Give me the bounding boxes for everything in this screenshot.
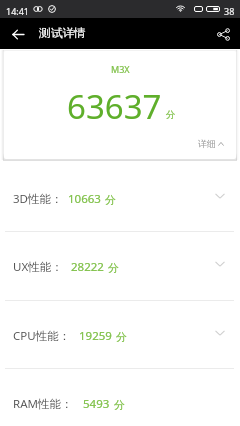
staticText: 14:41 [6,5,30,17]
button[interactable]: 详细 [198,138,224,149]
staticText: CPU性能： [13,328,71,344]
staticText: M3X [111,63,130,75]
staticText: 分 [114,398,125,412]
staticText: 10663 [68,191,101,207]
button[interactable]: RAM性能： [0,369,240,426]
button[interactable]: M3X [4,51,236,159]
staticText: 详细 [198,138,216,149]
staticText: 分 [108,261,119,275]
staticText: RAM性能： [13,396,73,412]
staticText: 38 [224,5,235,17]
button[interactable]: CPU性能： [0,301,240,370]
staticText: UX性能： [13,259,63,275]
staticText: 3D性能： [13,191,63,207]
staticText: 分 [116,330,127,344]
staticText: 63637 [67,84,162,129]
staticText: 分 [166,109,176,121]
staticText: 5493 [83,396,110,412]
button[interactable]: 3D性能： [0,164,240,232]
staticText: 测试详情 [39,26,86,41]
staticText: 28222 [71,259,104,275]
staticText: 19259 [79,328,112,344]
button[interactable]: UX性能： [0,232,240,300]
button[interactable]: Share [212,23,234,45]
button[interactable]: Back [7,23,29,45]
staticText: 分 [105,193,116,207]
